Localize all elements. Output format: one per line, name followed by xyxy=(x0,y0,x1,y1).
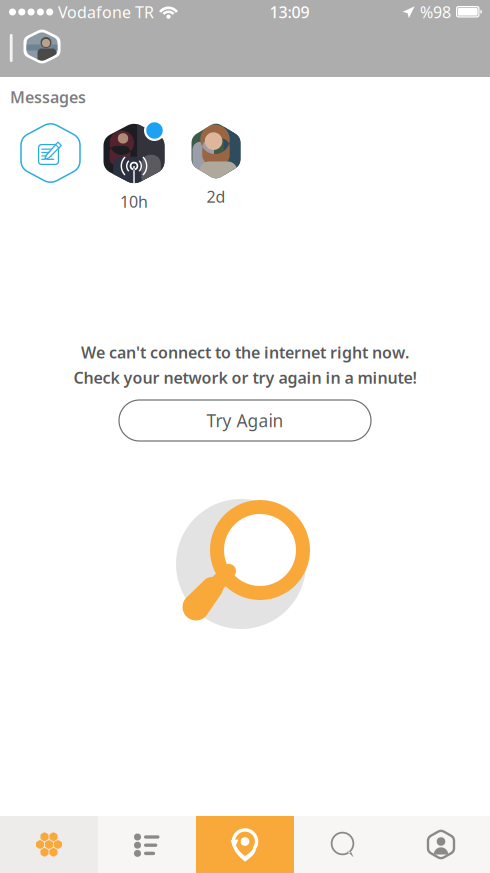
button[interactable]: Conversation 2d xyxy=(191,122,240,207)
button[interactable]: Profile xyxy=(22,27,61,65)
button[interactable]: Profile xyxy=(392,816,490,873)
button[interactable]: Conversation 10h xyxy=(103,122,164,212)
staticText: 13:09 xyxy=(269,1,309,23)
staticText: 2d xyxy=(206,186,225,207)
staticText: 10h xyxy=(120,191,148,212)
staticText: Vodafone TR xyxy=(58,1,154,23)
staticText: Messages xyxy=(10,86,86,108)
button[interactable]: Home xyxy=(0,816,98,873)
button[interactable]: Try Again xyxy=(119,400,371,441)
button[interactable]: Following xyxy=(98,816,196,873)
staticText: Check your network or try again in a min… xyxy=(73,367,416,388)
staticText: %98 xyxy=(420,1,451,23)
staticText: We can't connect to the internet right n… xyxy=(81,342,409,363)
button[interactable]: Broadcast xyxy=(196,816,294,873)
staticText: Try Again xyxy=(206,409,283,432)
button[interactable]: Search xyxy=(294,816,392,873)
button[interactable]: New message xyxy=(21,122,80,212)
